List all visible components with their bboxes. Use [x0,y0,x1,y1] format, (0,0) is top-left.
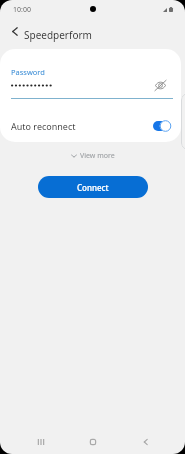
staticText: Connect [77,182,109,193]
button[interactable]: Navigate up [4,20,26,42]
staticText: Password [11,67,45,77]
button[interactable]: Recents [29,428,53,454]
button[interactable]: Connect [38,176,148,198]
button[interactable]: View more [67,149,119,163]
button[interactable]: Auto reconnect [153,120,175,132]
staticText: Speedperform [24,28,92,42]
staticText: View more [80,151,115,161]
button[interactable]: Back [134,428,158,454]
staticText: Auto reconnect [11,120,76,132]
button[interactable]: Home [81,428,105,454]
staticText: 10:00 [13,5,31,15]
button[interactable]: Show password [150,75,171,96]
